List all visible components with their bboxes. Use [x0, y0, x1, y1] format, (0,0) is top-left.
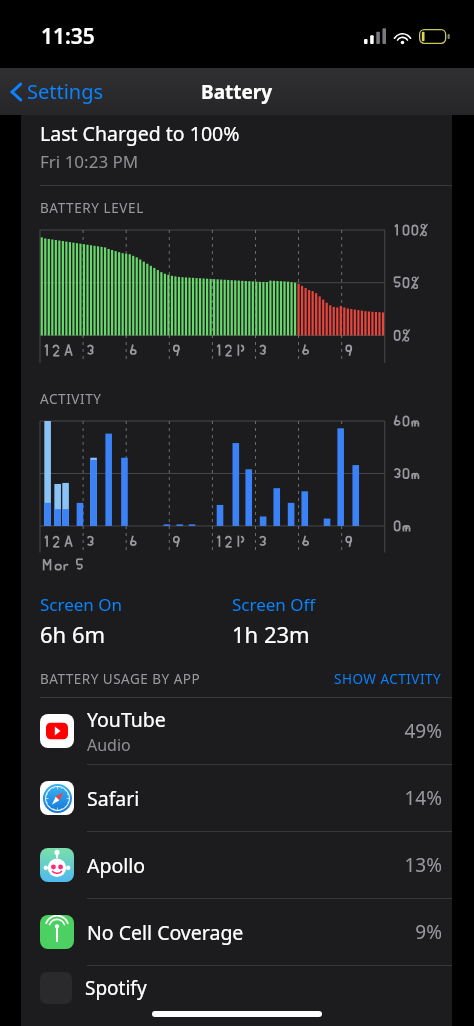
staticText: 6h 6m [40, 619, 106, 649]
staticText: 14% [404, 785, 442, 811]
staticText: Apollo [87, 852, 146, 879]
staticText: 1h 23m [232, 619, 310, 649]
staticText: Last Charged to 100% [40, 120, 240, 147]
staticText: Screen Off [232, 593, 316, 616]
staticText: Spotify [85, 975, 147, 1001]
staticText: 11:35 [41, 22, 95, 51]
staticText: 13% [404, 852, 442, 878]
staticText: BATTERY USAGE BY APP [40, 670, 334, 688]
button[interactable]: Apollo [21, 832, 452, 899]
staticText: Safari [87, 785, 140, 812]
staticText: ACTIVITY [40, 390, 102, 408]
staticText: No Cell Coverage [87, 919, 244, 946]
staticText: Screen On [40, 593, 123, 616]
button[interactable]: Spotify [21, 966, 452, 1006]
staticText: Audio [87, 734, 131, 756]
staticText: BATTERY LEVEL [40, 199, 144, 217]
staticText: 49% [404, 718, 442, 744]
button[interactable]: YouTube [21, 698, 452, 765]
staticText: 9% [415, 919, 442, 945]
button[interactable]: Safari [21, 765, 452, 832]
button[interactable]: SHOW ACTIVITY [334, 670, 442, 688]
button[interactable]: Settings [0, 74, 112, 109]
staticText: Battery [201, 79, 273, 105]
staticText: Fri 10:23 PM [40, 150, 139, 173]
staticText: YouTube [87, 706, 166, 733]
staticText: Settings [27, 78, 104, 105]
button[interactable]: No Cell Coverage [21, 899, 452, 966]
